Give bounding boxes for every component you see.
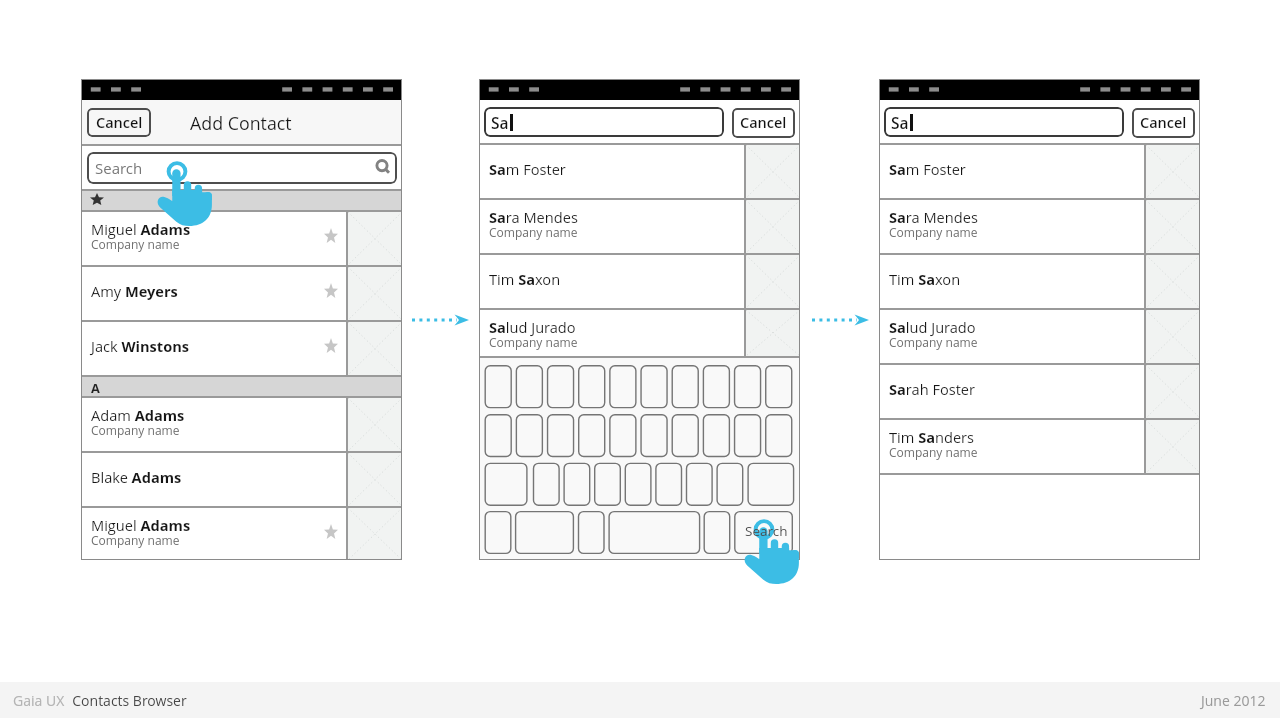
staticText: June 2012 [1201, 691, 1266, 710]
button[interactable]: Search [87, 152, 397, 184]
staticText: Company name [91, 422, 180, 438]
staticText: Search [95, 158, 143, 178]
staticText: Miguel Adams [91, 515, 191, 535]
staticText: Search [745, 522, 788, 540]
button[interactable]: Miguel Adams [81, 212, 402, 265]
button[interactable]: Tim Sanders [879, 420, 1200, 473]
other: Tap [157, 162, 213, 226]
button[interactable]: Salud Jurado [879, 310, 1200, 363]
staticText: Company name [889, 444, 978, 460]
staticText: A [91, 379, 100, 396]
staticText: Sam Foster [889, 159, 966, 179]
button[interactable]: Cancel [732, 108, 795, 138]
staticText: Amy Meyers [91, 281, 178, 301]
button[interactable]: Adam Adams [81, 398, 402, 451]
staticText: Sa [491, 112, 509, 133]
staticText: Company name [889, 224, 978, 240]
staticText: Cancel [96, 113, 143, 133]
button[interactable]: Miguel Adams [81, 508, 402, 560]
staticText: Miguel Adams [91, 219, 191, 239]
staticText: Sara Mendes [889, 207, 978, 227]
staticText: Adam Adams [91, 405, 185, 425]
staticText: Cancel [1140, 113, 1187, 133]
staticText: Sa [891, 112, 909, 133]
button[interactable]: Sara Mendes [479, 200, 800, 253]
staticText: Contacts Browser [65, 691, 187, 710]
button[interactable]: Sa [884, 107, 1124, 137]
button[interactable]: Tim Saxon [479, 255, 800, 308]
staticText: Company name [91, 532, 180, 548]
staticText: Salud Jurado [489, 317, 576, 337]
button[interactable]: Jack Winstons [81, 322, 402, 375]
staticText: Gaia UX [13, 691, 65, 710]
staticText: Tim Saxon [489, 269, 561, 289]
staticText: Sarah Foster [889, 379, 975, 399]
staticText: Company name [889, 334, 978, 350]
button[interactable]: Cancel [87, 108, 151, 137]
other: Search [373, 157, 397, 181]
staticText: Tim Sanders [889, 427, 974, 447]
button[interactable]: Sara Mendes [879, 200, 1200, 253]
staticText: Add Contact [190, 111, 292, 135]
staticText: Salud Jurado [889, 317, 976, 337]
staticText: Sara Mendes [489, 207, 578, 227]
button[interactable]: Sarah Foster [879, 365, 1200, 418]
button[interactable]: Amy Meyers [81, 267, 402, 320]
staticText: Company name [489, 224, 578, 240]
staticText: Tim Saxon [889, 269, 961, 289]
staticText: Sam Foster [489, 159, 566, 179]
button[interactable]: Sa [484, 107, 724, 137]
button[interactable]: Search [735, 511, 794, 553]
button[interactable]: Sam Foster [879, 145, 1200, 198]
button[interactable]: Salud Jurado [479, 310, 800, 356]
staticText: Company name [489, 334, 578, 350]
button[interactable]: Cancel [1132, 108, 1195, 138]
button[interactable]: Sam Foster [479, 145, 800, 198]
staticText: Jack Winstons [91, 336, 190, 356]
staticText: Blake Adams [91, 467, 182, 487]
other: Tap [744, 520, 800, 584]
button[interactable]: Tim Saxon [879, 255, 1200, 308]
staticText: Company name [91, 236, 180, 252]
staticText: Cancel [740, 113, 787, 133]
button[interactable]: Blake Adams [81, 453, 402, 506]
